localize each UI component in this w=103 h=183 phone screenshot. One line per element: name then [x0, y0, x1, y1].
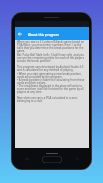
staticText: About this program [28, 32, 59, 36]
button[interactable]: Home [42, 156, 62, 163]
button[interactable]: Back [15, 27, 25, 40]
button[interactable]: Back [75, 157, 79, 161]
staticText: • When you start generating a new break … [17, 72, 86, 94]
staticText: When you start a 3 Cushion Billiards gam… [17, 40, 86, 53]
staticText: New shots can carry a PGA calculated in … [17, 96, 86, 103]
staticText: Bal. Pulse Ball Table (cells, 5 ball) ha… [17, 53, 86, 63]
staticText: This program uses developed by Android S… [17, 65, 86, 72]
button[interactable]: Recent apps [25, 157, 29, 161]
